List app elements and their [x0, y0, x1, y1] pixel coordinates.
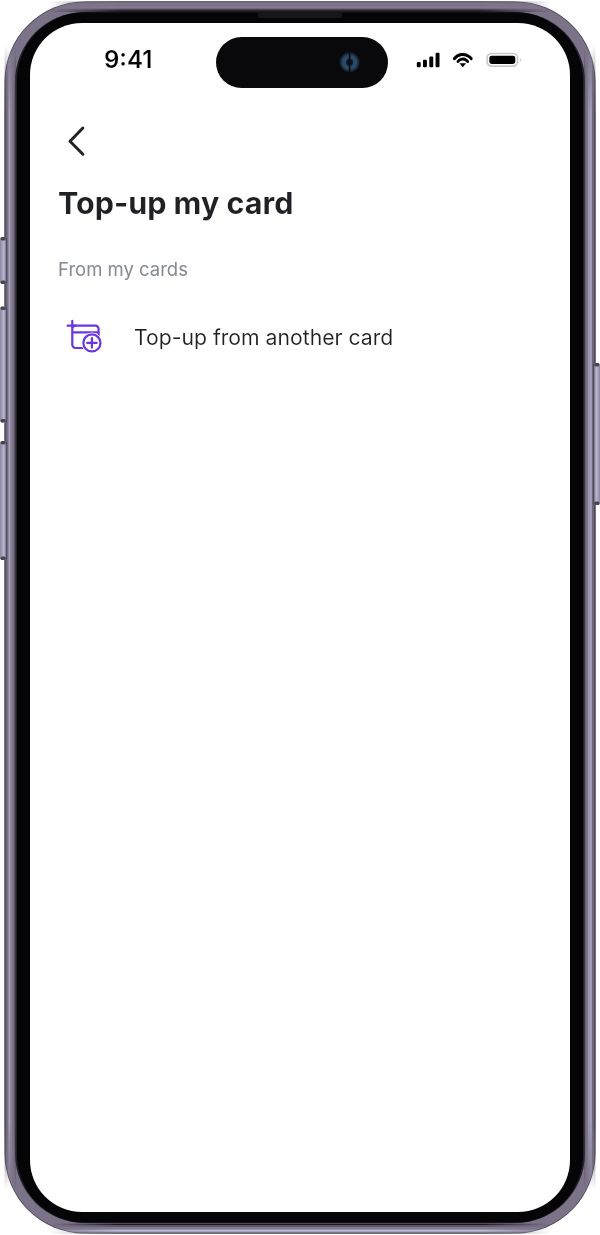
button[interactable]: Back	[54, 111, 102, 159]
staticText: Top-up from another card	[134, 324, 394, 350]
staticText: 9:41	[104, 45, 153, 74]
staticText: From my cards	[58, 258, 188, 280]
button[interactable]: Top-up from another card	[30, 304, 570, 368]
staticText: Top-up my card	[58, 184, 294, 221]
